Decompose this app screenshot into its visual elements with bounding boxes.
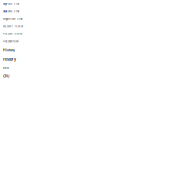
staticText: Single-Core: 3 738 — [3, 3, 19, 5]
staticText: 4.02.2024, 13:50:00 — [3, 33, 22, 35]
staticText: History — [3, 57, 16, 61]
staticText: Single-Core: 3 738 — [3, 18, 22, 20]
staticText: Single-Core: 3 738 — [3, 10, 19, 13]
staticText: History — [3, 48, 15, 52]
staticText: CPU — [3, 67, 9, 69]
staticText: CPU — [3, 74, 9, 78]
staticText: 4.02.2024 r. 13:50:00 — [3, 25, 23, 28]
staticText: 4.02.2024 13:50 — [3, 40, 18, 43]
